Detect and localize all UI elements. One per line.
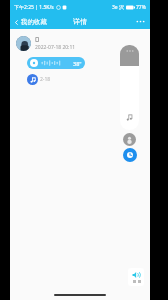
button[interactable]: Timer bbox=[123, 148, 137, 162]
staticText: 2022-07-18 20:11 bbox=[35, 44, 76, 51]
staticText: 38" bbox=[73, 60, 82, 67]
button[interactable]: Volume bbox=[128, 268, 144, 286]
button[interactable]: Drag handle bbox=[120, 45, 139, 66]
button[interactable]: Music panel bbox=[120, 66, 139, 130]
button[interactable]: 2022-07-18 20:11 bbox=[10, 33, 150, 51]
button[interactable]: 我的收藏 bbox=[10, 16, 51, 28]
button[interactable]: 2-18 bbox=[27, 74, 51, 85]
button[interactable]: Profile bbox=[123, 133, 136, 146]
staticText: 我的收藏 bbox=[21, 18, 47, 26]
button[interactable]: 38" bbox=[27, 57, 85, 69]
button[interactable]: More options bbox=[131, 16, 150, 27]
staticText: 77% bbox=[136, 4, 146, 11]
staticText: 详情 bbox=[73, 17, 87, 26]
staticText: 下午2:25 | 1.5K/s bbox=[14, 4, 54, 11]
staticText: 3e 沢 bbox=[112, 4, 124, 11]
staticText: 2-18 bbox=[40, 76, 51, 83]
